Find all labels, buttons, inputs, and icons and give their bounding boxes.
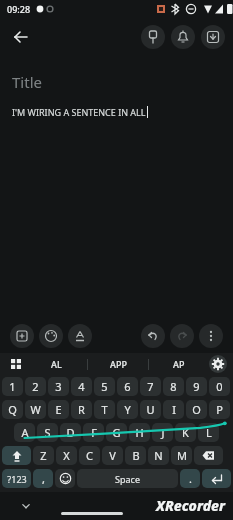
- button[interactable]: 8: [163, 377, 184, 396]
- button[interactable]: K: [175, 423, 196, 442]
- staticText: 0: [216, 379, 223, 394]
- staticText: 3: [55, 379, 62, 394]
- button[interactable]: D: [60, 423, 81, 442]
- staticText: J: [161, 425, 165, 440]
- button[interactable]: I: [163, 400, 184, 419]
- button[interactable]: G: [106, 423, 127, 442]
- button[interactable]: Pin: [141, 25, 165, 49]
- button[interactable]: I'M WIRING A SENTENCE IN ALL: [12, 106, 221, 118]
- staticText: S: [44, 425, 51, 440]
- staticText: V: [109, 448, 116, 463]
- staticText: F: [91, 425, 97, 440]
- staticText: Y: [124, 402, 131, 417]
- button[interactable]: O: [186, 400, 207, 419]
- button[interactable]: C: [79, 446, 100, 465]
- button[interactable]: Palette: [39, 324, 63, 348]
- button[interactable]: H: [129, 423, 150, 442]
- staticText: W: [30, 402, 41, 417]
- staticText: 8: [170, 379, 177, 394]
- button[interactable]: V: [102, 446, 123, 465]
- button[interactable]: AL: [26, 353, 87, 375]
- staticText: I'M WIRING A SENTENCE IN ALL: [12, 106, 146, 118]
- button[interactable]: Z: [33, 446, 54, 465]
- button[interactable]: 3: [48, 377, 69, 396]
- button[interactable]: Emoji: [55, 469, 75, 488]
- button[interactable]: 1: [2, 377, 23, 396]
- staticText: Q: [8, 402, 17, 417]
- button[interactable]: Keyboard settings: [209, 355, 227, 373]
- button[interactable]: 9: [186, 377, 207, 396]
- staticText: C: [86, 448, 93, 463]
- button[interactable]: Add: [10, 324, 34, 348]
- button[interactable]: 6: [117, 377, 138, 396]
- button[interactable]: X: [56, 446, 77, 465]
- staticText: ,: [42, 471, 45, 486]
- staticText: .: [189, 471, 192, 486]
- staticText: B: [132, 448, 140, 463]
- button[interactable]: B: [125, 446, 146, 465]
- button[interactable]: More options: [199, 324, 223, 348]
- button[interactable]: Shift: [2, 446, 31, 465]
- button[interactable]: E: [48, 400, 69, 419]
- button[interactable]: Reminder: [171, 25, 195, 49]
- button[interactable]: T: [94, 400, 115, 419]
- staticText: APP: [110, 358, 127, 370]
- staticText: M: [177, 448, 187, 463]
- staticText: T: [101, 402, 108, 417]
- button[interactable]: Undo: [141, 324, 165, 348]
- staticText: E: [55, 402, 62, 417]
- staticText: XRecorder: [156, 496, 225, 515]
- button[interactable]: Enter: [202, 469, 231, 488]
- staticText: 7: [147, 379, 154, 394]
- staticText: O: [192, 402, 201, 417]
- staticText: U: [146, 402, 155, 417]
- button[interactable]: P: [209, 400, 230, 419]
- button[interactable]: 7: [140, 377, 161, 396]
- button[interactable]: Space: [77, 469, 178, 488]
- staticText: 2: [32, 379, 39, 394]
- button[interactable]: L: [198, 423, 219, 442]
- button[interactable]: Redo: [170, 324, 194, 348]
- staticText: L: [206, 425, 212, 440]
- button[interactable]: AP: [149, 353, 209, 375]
- button[interactable]: S: [37, 423, 58, 442]
- staticText: A: [21, 425, 29, 440]
- button[interactable]: N: [148, 446, 169, 465]
- button[interactable]: A: [14, 423, 35, 442]
- staticText: X: [63, 448, 70, 463]
- staticText: 6: [124, 379, 131, 394]
- button[interactable]: Archive: [201, 25, 225, 49]
- button[interactable]: Y: [117, 400, 138, 419]
- staticText: Z: [40, 448, 47, 463]
- button[interactable]: ,: [33, 469, 53, 488]
- button[interactable]: Hide keyboard: [16, 496, 36, 516]
- button[interactable]: M: [171, 446, 192, 465]
- button[interactable]: Title: [12, 72, 221, 92]
- button[interactable]: 4: [71, 377, 92, 396]
- staticText: 5: [101, 379, 108, 394]
- staticText: Title: [12, 72, 42, 92]
- button[interactable]: 5: [94, 377, 115, 396]
- button[interactable]: F: [83, 423, 104, 442]
- button[interactable]: Back: [8, 24, 34, 50]
- button[interactable]: R: [71, 400, 92, 419]
- button[interactable]: J: [152, 423, 173, 442]
- button[interactable]: W: [25, 400, 46, 419]
- button[interactable]: Backspace: [194, 446, 223, 465]
- button[interactable]: APP: [88, 353, 148, 375]
- button[interactable]: Text format: [68, 324, 92, 348]
- button[interactable]: .: [180, 469, 200, 488]
- button[interactable]: Clipboard: [6, 354, 26, 374]
- staticText: 1: [9, 379, 16, 394]
- staticText: 09:28: [7, 3, 31, 15]
- button[interactable]: Q: [2, 400, 23, 419]
- staticText: D: [66, 425, 75, 440]
- button[interactable]: U: [140, 400, 161, 419]
- button[interactable]: 2: [25, 377, 46, 396]
- staticText: ?123: [7, 473, 27, 485]
- staticText: AP: [173, 358, 185, 370]
- button[interactable]: ?123: [2, 469, 31, 488]
- staticText: N: [154, 448, 163, 463]
- button[interactable]: 0: [209, 377, 230, 396]
- staticText: R: [78, 402, 85, 417]
